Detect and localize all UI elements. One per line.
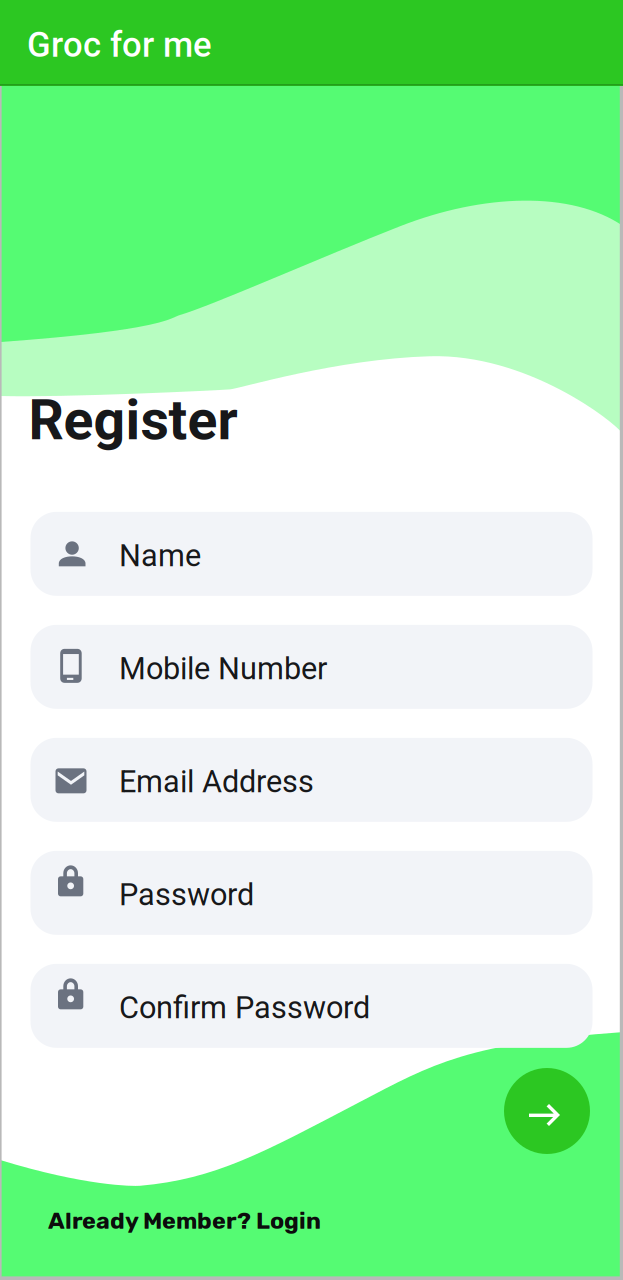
button[interactable]: Name: [30, 512, 592, 596]
staticText: Confirm Password: [119, 990, 370, 1026]
button[interactable]: Mobile Number: [30, 625, 592, 709]
staticText: Email Address: [119, 764, 314, 800]
staticText: Register: [28, 388, 237, 453]
staticText: Groc for me: [27, 25, 212, 65]
button[interactable]: Continue: [504, 1068, 590, 1154]
staticText: Password: [119, 877, 254, 913]
button[interactable]: Already Member? Login: [48, 1207, 321, 1234]
button[interactable]: Confirm Password: [30, 964, 592, 1048]
staticText: Already Member? Login: [48, 1207, 321, 1234]
staticText: Name: [119, 538, 201, 574]
button[interactable]: Password: [30, 851, 592, 935]
button[interactable]: Email Address: [30, 738, 592, 822]
staticText: Mobile Number: [119, 651, 327, 687]
